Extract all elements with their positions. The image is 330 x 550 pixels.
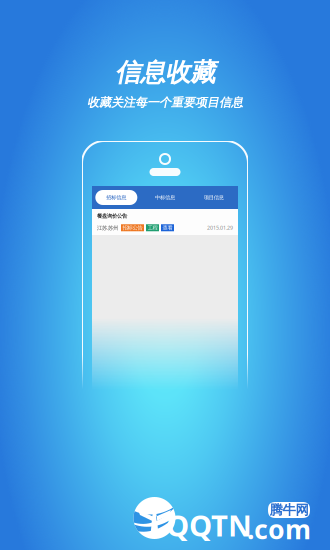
- staticText: 招标信息: [106, 194, 126, 201]
- staticText: 信息收藏: [115, 57, 215, 88]
- staticText: 江苏.苏州: [97, 224, 118, 231]
- staticText: 查看: [162, 224, 172, 231]
- staticText: .com: [247, 511, 311, 547]
- staticText: 工程: [147, 224, 157, 231]
- button[interactable]: 中标信息: [141, 186, 189, 209]
- staticText: 餐盘询价公告: [97, 213, 127, 219]
- staticText: 腾牛网: [269, 502, 308, 518]
- staticText: 项目信息: [204, 194, 224, 201]
- staticText: QQTN: [166, 505, 252, 544]
- staticText: 招标公告: [122, 224, 142, 231]
- button[interactable]: 餐盘询价公告: [92, 209, 238, 235]
- staticText: 2015.01.29: [207, 224, 233, 231]
- staticText: 中标信息: [155, 194, 175, 201]
- button[interactable]: 项目信息: [189, 186, 238, 209]
- staticText: 收藏关注每一个重要项目信息: [87, 95, 243, 110]
- button[interactable]: 招标信息: [92, 186, 141, 209]
